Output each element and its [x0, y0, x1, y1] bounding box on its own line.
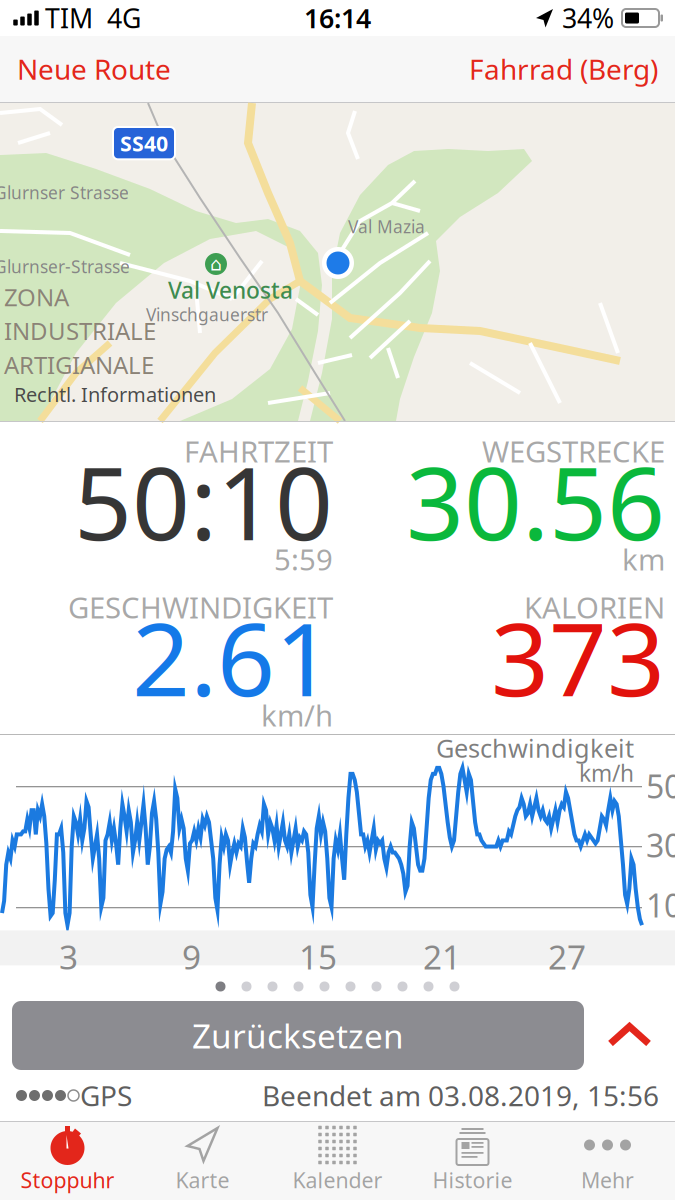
button[interactable]: Details aufklappen — [584, 1001, 675, 1070]
staticText: 373 — [491, 590, 665, 724]
button[interactable]: Stoppuhr — [0, 1122, 135, 1200]
staticText: 50 — [646, 765, 675, 807]
staticText: ARTIGIANALE — [4, 349, 154, 381]
staticText: Neue Route — [17, 50, 171, 88]
button[interactable]: Neue Route — [0, 36, 181, 102]
staticText: 50:10 — [74, 434, 333, 568]
staticText: Historie — [432, 1166, 512, 1194]
staticText: WEGSTRECKE — [482, 431, 665, 470]
button[interactable]: Historie — [405, 1122, 540, 1200]
staticText: GPS — [80, 1077, 132, 1114]
staticText: Beendet am 03.08.2019, 15:56 — [262, 1077, 659, 1114]
button[interactable]: Kalender — [270, 1122, 405, 1200]
button[interactable]: Zurücksetzen — [12, 1001, 584, 1070]
staticText: Val Venosta — [168, 275, 293, 305]
staticText: km/h — [579, 758, 634, 788]
staticText: Glurnser-Strasse — [0, 255, 130, 278]
staticText: ZONA — [4, 281, 69, 313]
staticText: 5:59 — [274, 539, 333, 578]
staticText: Stoppuhr — [20, 1166, 114, 1194]
staticText: 16:14 — [304, 0, 371, 36]
staticText: 2.61 — [132, 590, 333, 724]
staticText: Rechtl. Informationen — [14, 381, 216, 408]
staticText: TIM — [45, 0, 93, 36]
staticText: 34% — [562, 0, 614, 36]
staticText: KALORIEN — [524, 587, 665, 626]
staticText: Kalender — [292, 1166, 382, 1194]
staticText: 21 — [423, 934, 461, 979]
button[interactable]: Karte — [135, 1122, 270, 1200]
staticText: Vinschgauerstr — [146, 303, 268, 326]
staticText: 4G — [107, 0, 141, 36]
staticText: SS40 — [120, 129, 168, 157]
staticText: Glurnser Strasse — [0, 181, 129, 204]
staticText: Zurücksetzen — [192, 1013, 404, 1058]
staticText: km — [622, 539, 665, 578]
button[interactable]: Fahrrad (Berg) — [459, 36, 675, 102]
staticText: ⌂ — [210, 253, 222, 275]
staticText: 9 — [182, 934, 201, 979]
staticText: 30 — [646, 824, 675, 866]
staticText: FAHRTZEIT — [184, 431, 333, 470]
staticText: 3 — [59, 934, 78, 979]
staticText: Val Mazia — [348, 215, 425, 238]
staticText: GESCHWINDIGKEIT — [68, 587, 333, 626]
staticText: 10 — [646, 884, 675, 926]
staticText: Mehr — [581, 1166, 634, 1194]
staticText: Fahrrad (Berg) — [469, 50, 658, 88]
staticText: Karte — [175, 1166, 229, 1194]
staticText: 27 — [548, 934, 586, 979]
button[interactable]: Mehr — [540, 1122, 675, 1200]
staticText: 15 — [299, 934, 337, 979]
staticText: 30.56 — [406, 434, 665, 568]
staticText: km/h — [261, 695, 333, 734]
staticText: INDUSTRIALE — [4, 315, 156, 347]
staticText: Geschwindigkeit — [436, 731, 634, 765]
